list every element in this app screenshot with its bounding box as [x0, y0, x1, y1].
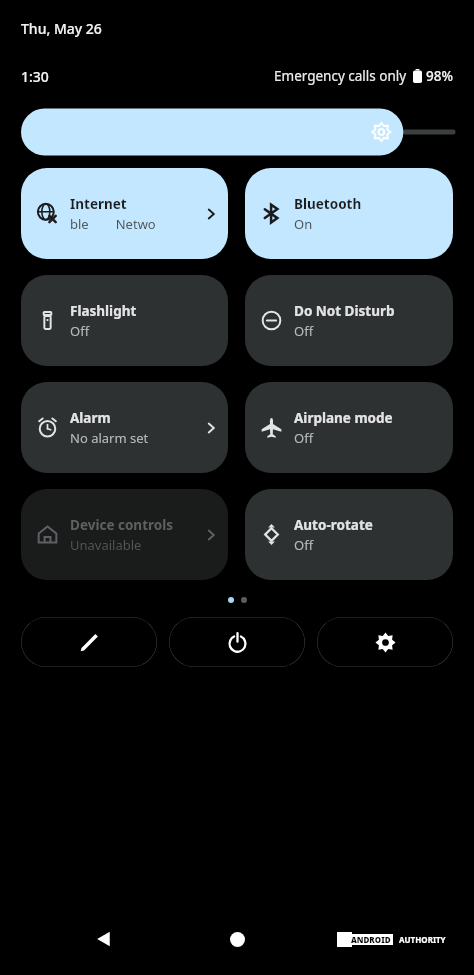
button[interactable]: Settings	[317, 617, 453, 667]
button[interactable]: Auto-rotate	[245, 489, 453, 580]
staticText: Device controls	[70, 516, 173, 534]
button[interactable]: Alarm	[21, 382, 228, 473]
button[interactable]: Edit	[21, 617, 157, 667]
button[interactable]: Home	[217, 919, 257, 959]
button[interactable]: Back	[84, 919, 124, 959]
button[interactable]: Internet	[21, 168, 228, 259]
staticText: ANDROID	[351, 934, 391, 945]
staticText: 1:30	[21, 67, 49, 86]
button[interactable]: Do Not Disturb	[245, 275, 453, 366]
button[interactable]: Power	[169, 617, 305, 667]
staticText: Off	[294, 429, 314, 447]
staticText: AUTHORITY	[399, 934, 446, 945]
staticText: No alarm set	[70, 429, 149, 447]
staticText: Off	[70, 322, 90, 340]
staticText: Emergency calls only	[274, 67, 407, 85]
staticText: Alarm	[70, 409, 111, 427]
staticText: Unavailable	[70, 536, 142, 554]
staticText: Thu, May 26	[21, 19, 102, 38]
button[interactable]: Airplane mode	[245, 382, 453, 473]
staticText: Bluetooth	[294, 195, 362, 213]
staticText: Off	[294, 536, 314, 554]
button[interactable]: Flashlight	[21, 275, 228, 366]
staticText: Internet	[70, 195, 127, 213]
staticText: Flashlight	[70, 302, 137, 320]
button[interactable]: Brightness	[21, 104, 453, 160]
staticText: 98%	[426, 67, 453, 85]
staticText: ble Netwo	[70, 215, 156, 233]
staticText: Auto-rotate	[294, 516, 373, 534]
staticText: Do Not Disturb	[294, 302, 395, 320]
staticText: On	[294, 215, 313, 233]
staticText: Off	[294, 322, 314, 340]
button[interactable]: Device controls	[21, 489, 228, 580]
staticText: Airplane mode	[294, 409, 393, 427]
button[interactable]: Bluetooth	[245, 168, 453, 259]
